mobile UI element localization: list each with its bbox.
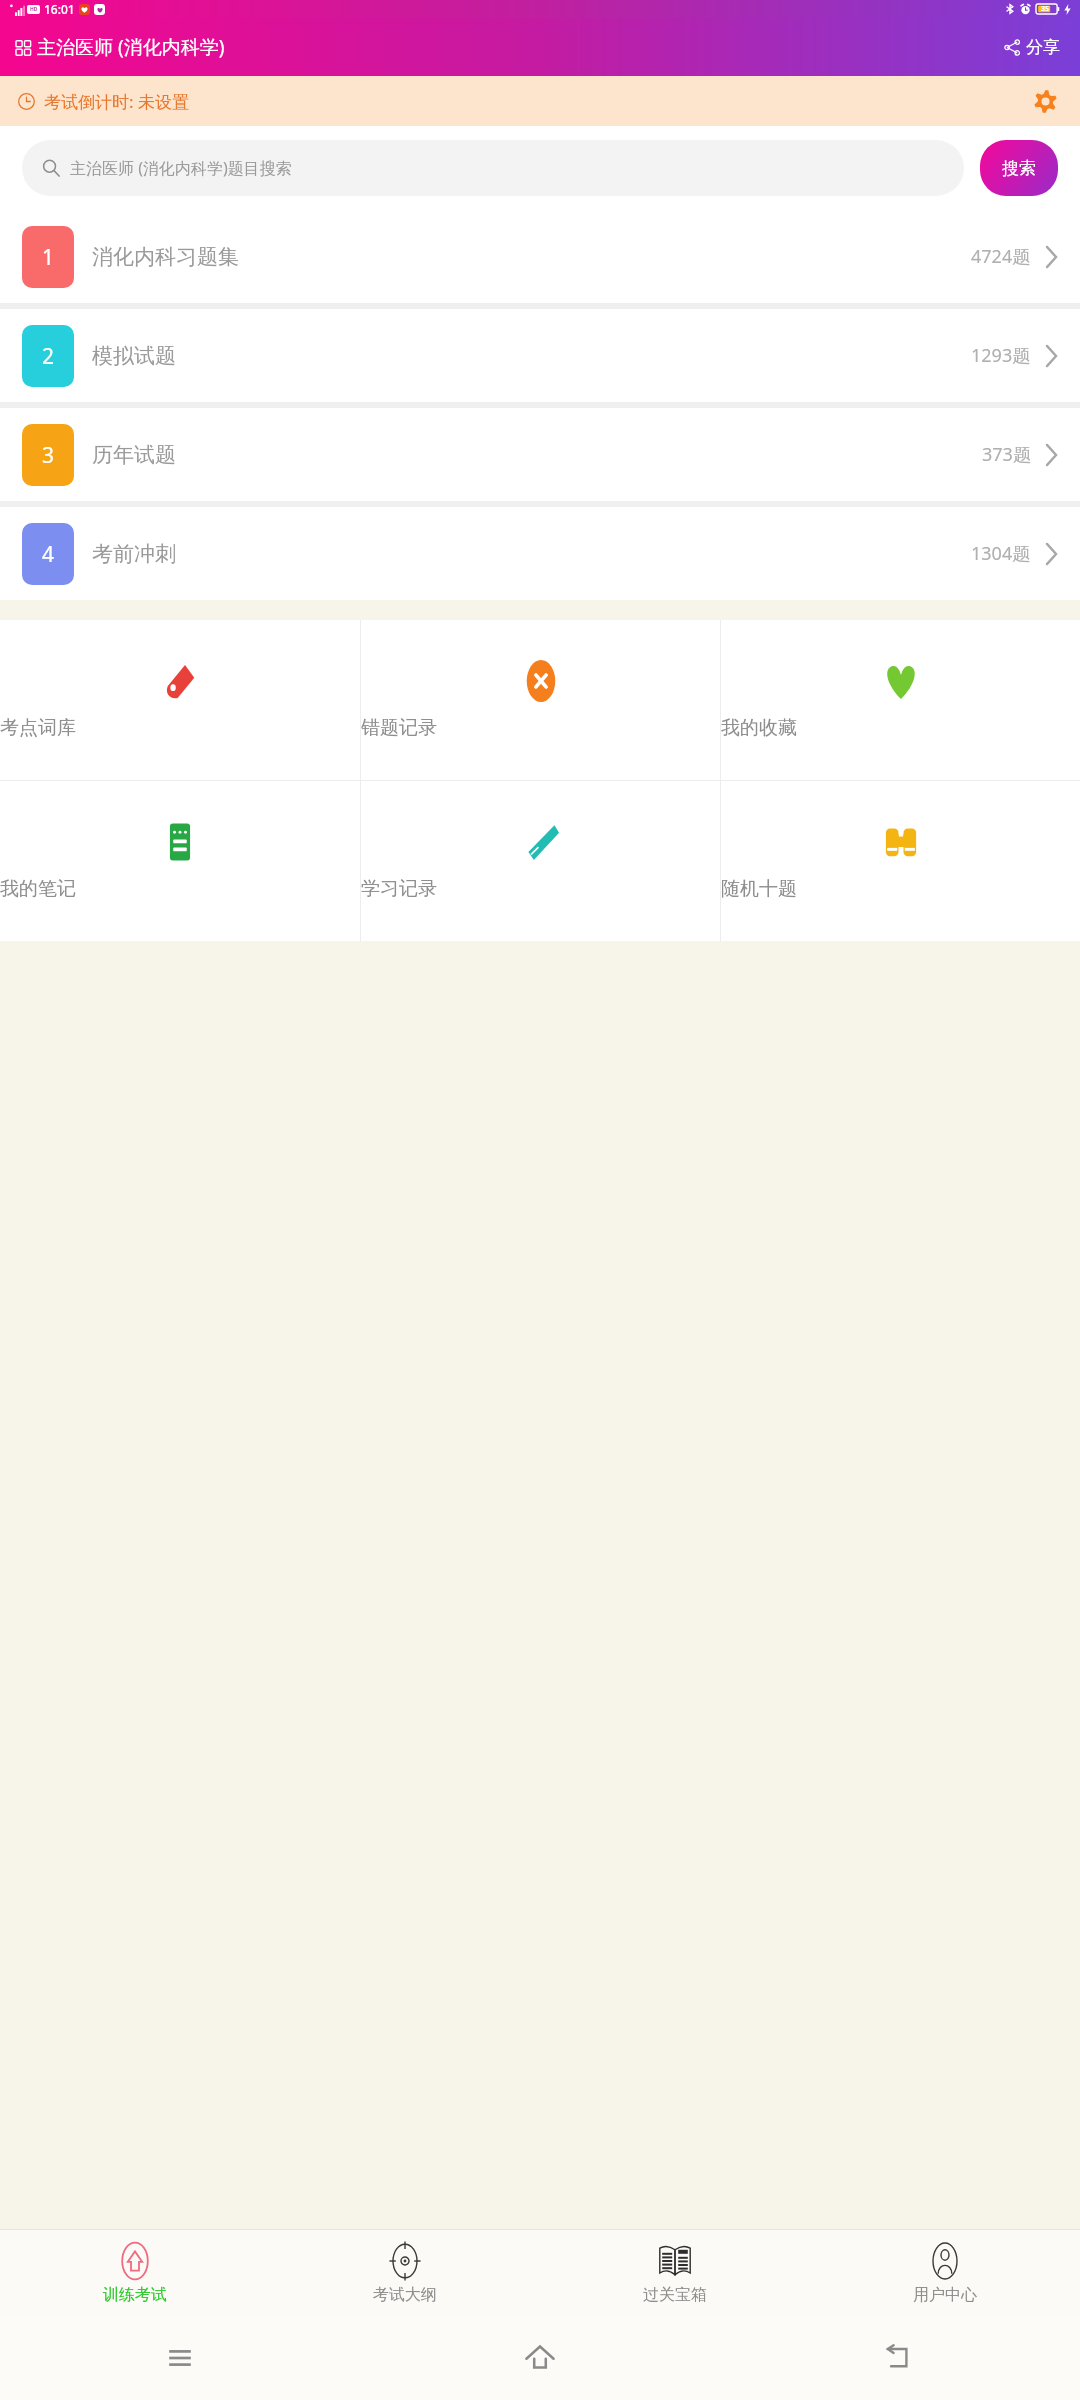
button[interactable]: 学习记录 bbox=[361, 781, 720, 941]
staticText: 错题记录 bbox=[361, 716, 720, 740]
staticText: 35 bbox=[1041, 4, 1050, 14]
staticText: 主治医师 (消化内科学) bbox=[37, 34, 225, 60]
staticText: 我的笔记 bbox=[0, 877, 360, 901]
button[interactable]: 我的笔记 bbox=[0, 781, 360, 941]
staticText: 搜索 bbox=[1002, 158, 1036, 179]
button[interactable]: 搜索 bbox=[980, 140, 1058, 196]
staticText: 用户中心 bbox=[913, 2285, 977, 2305]
button[interactable]: 我的收藏 bbox=[721, 620, 1080, 780]
staticText: 1 bbox=[42, 243, 55, 272]
button[interactable]: Home bbox=[360, 2315, 720, 2400]
staticText: 2 bbox=[42, 342, 55, 371]
staticText: 模拟试题 bbox=[92, 343, 176, 369]
button[interactable]: 4 bbox=[0, 507, 1080, 600]
button[interactable]: 考试倒计时: 未设置 bbox=[0, 76, 1080, 126]
button[interactable]: 过关宝箱 bbox=[540, 2230, 810, 2315]
button[interactable]: 考点词库 bbox=[0, 620, 360, 780]
staticText: 16:01 bbox=[44, 1, 75, 17]
staticText: 训练考试 bbox=[103, 2285, 167, 2305]
button[interactable]: 2 bbox=[0, 309, 1080, 402]
staticText: 考试倒计时: 未设置 bbox=[44, 90, 189, 113]
staticText: 1304题 bbox=[971, 541, 1031, 566]
button[interactable]: 1 bbox=[0, 210, 1080, 303]
button[interactable]: 考试大纲 bbox=[270, 2230, 540, 2315]
staticText: 分享 bbox=[1026, 37, 1060, 58]
staticText: 考前冲刺 bbox=[92, 541, 176, 567]
button[interactable]: 3 bbox=[0, 408, 1080, 501]
staticText: 随机十题 bbox=[721, 877, 1080, 901]
staticText: 消化内科习题集 bbox=[92, 244, 239, 270]
button[interactable]: 随机十题 bbox=[721, 781, 1080, 941]
staticText: 373题 bbox=[982, 442, 1031, 467]
staticText: 主治医师 (消化内科学)题目搜索 bbox=[70, 157, 292, 179]
button[interactable]: Back bbox=[720, 2315, 1080, 2400]
staticText: 4724题 bbox=[971, 244, 1031, 269]
button[interactable]: 分享 bbox=[1000, 31, 1064, 64]
button[interactable]: Settings bbox=[1028, 84, 1062, 118]
button[interactable]: 错题记录 bbox=[361, 620, 720, 780]
staticText: 过关宝箱 bbox=[643, 2285, 707, 2305]
staticText: 历年试题 bbox=[92, 442, 176, 468]
staticText: 考试大纲 bbox=[373, 2285, 437, 2305]
staticText: HD bbox=[30, 6, 38, 13]
staticText: 1293题 bbox=[971, 343, 1031, 368]
staticText: 我的收藏 bbox=[721, 716, 1080, 740]
staticText: 考点词库 bbox=[0, 716, 360, 740]
staticText: 学习记录 bbox=[361, 877, 720, 901]
staticText: 3 bbox=[42, 441, 55, 470]
button[interactable]: 用户中心 bbox=[810, 2230, 1080, 2315]
button[interactable]: 训练考试 bbox=[0, 2230, 270, 2315]
button[interactable]: 主治医师 (消化内科学)题目搜索 bbox=[22, 140, 964, 196]
staticText: 4 bbox=[42, 540, 55, 569]
button[interactable]: Recents bbox=[0, 2315, 360, 2400]
